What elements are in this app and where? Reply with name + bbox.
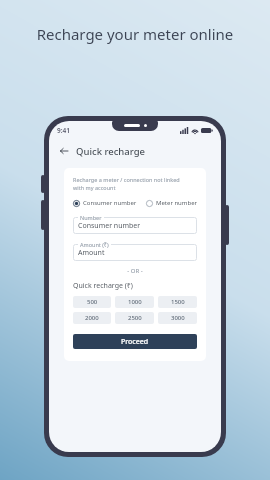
button[interactable]: 500 <box>73 296 111 308</box>
staticText: Meter number <box>156 199 197 207</box>
button[interactable]: 2000 <box>73 312 111 324</box>
button[interactable]: 1500 <box>158 296 197 308</box>
staticText: 500 <box>87 298 98 306</box>
staticText: - OR - <box>73 267 197 275</box>
staticText: 2500 <box>128 314 142 322</box>
staticText: Recharge a meter / connection not linked… <box>73 176 180 192</box>
staticText: Amount <box>78 248 105 258</box>
staticText: Proceed <box>121 337 149 347</box>
staticText: 1000 <box>128 298 142 306</box>
staticText: Amount (₹) <box>80 241 109 248</box>
button[interactable]: Amount <box>73 244 197 261</box>
button[interactable]: Back <box>57 144 71 158</box>
staticText: Quick recharge <box>76 145 146 158</box>
staticText: 2000 <box>85 314 99 322</box>
staticText: 9:41 <box>57 126 70 135</box>
button[interactable]: 3000 <box>158 312 197 324</box>
staticText: Consumer number <box>83 199 137 207</box>
button[interactable]: 2500 <box>115 312 154 324</box>
button[interactable]: Proceed <box>73 334 197 349</box>
staticText: 3000 <box>171 314 185 322</box>
staticText: 1500 <box>171 298 185 306</box>
staticText: Recharge your meter online <box>0 24 270 44</box>
staticText: Number <box>80 214 102 221</box>
button[interactable]: Consumer number <box>73 199 137 207</box>
button[interactable]: 1000 <box>115 296 154 308</box>
staticText: Consumer number <box>78 221 141 231</box>
button[interactable]: Consumer number <box>73 217 197 234</box>
button[interactable]: Meter number <box>146 199 197 207</box>
staticText: Quick recharge (₹) <box>73 281 133 291</box>
